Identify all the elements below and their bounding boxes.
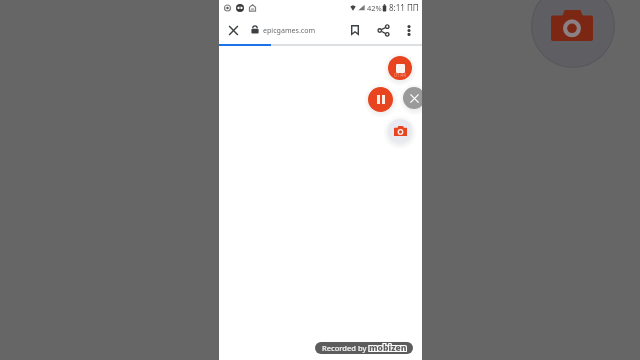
staticText: 42% (367, 3, 382, 13)
button[interactable]: Stop recording (388, 56, 412, 80)
button[interactable]: More options (396, 17, 422, 43)
button[interactable]: Close tab (219, 16, 247, 44)
button[interactable]: Screen recorder (531, 0, 615, 68)
staticText: mobizen (369, 342, 407, 354)
button[interactable]: Share (370, 17, 396, 43)
staticText: mobizen (369, 342, 407, 354)
staticText: 8:11 ПП (389, 2, 419, 13)
button[interactable]: Bookmark (342, 17, 368, 43)
staticText: Recorded by (322, 343, 369, 353)
button[interactable]: Close recorder (403, 87, 422, 109)
button[interactable]: Take screenshot (388, 119, 412, 143)
staticText: epicgames.com (263, 25, 316, 35)
button[interactable]: Pause recording (368, 87, 393, 112)
staticText: 01:44 (394, 72, 406, 78)
